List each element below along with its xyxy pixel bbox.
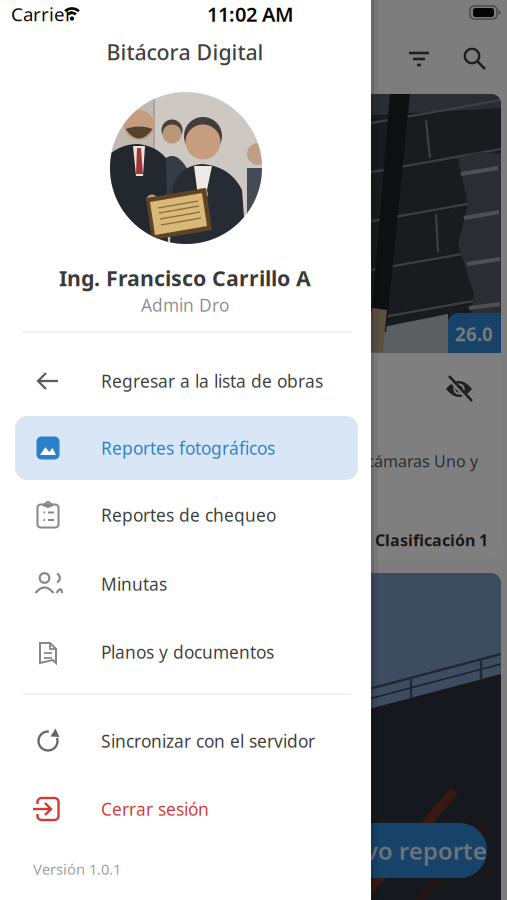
staticText: Versión 1.0.1	[33, 859, 121, 879]
staticText: Bitácora Digital	[106, 38, 263, 66]
button[interactable]: Buscar	[443, 37, 507, 81]
staticText: Nuevo reporte	[317, 835, 487, 866]
button[interactable]: Regresar a la lista de obras	[15, 349, 358, 413]
button[interactable]: Planos y documentos	[15, 620, 358, 684]
staticText: Reportes de chequeo	[101, 503, 276, 526]
button[interactable]: Sincronizar con el servidor	[15, 709, 358, 773]
staticText: Reportes fotográficos	[101, 436, 275, 459]
staticText: Muros Recámaras Uno y	[294, 450, 478, 472]
staticText: Cerrar sesión	[101, 797, 209, 820]
staticText: Minutas	[101, 572, 167, 595]
button[interactable]: Reportes fotográficos	[15, 416, 358, 480]
button[interactable]: Reportes de chequeo	[15, 483, 358, 547]
button[interactable]: Reporte Recámaras Uno y	[6, 94, 501, 559]
staticText: Admin Dro	[141, 293, 229, 316]
button[interactable]: Filtrar	[387, 37, 451, 81]
staticText: Ing. Francisco Carrillo A	[59, 264, 311, 292]
staticText: Regresar a la lista de obras	[101, 369, 323, 392]
button[interactable]: Cerrar sesión	[15, 777, 358, 841]
staticText: Clasificación 1	[375, 529, 488, 551]
staticText: Sincronizar con el servidor	[101, 729, 315, 752]
button[interactable]: Ocultar	[435, 376, 483, 402]
button[interactable]: Nuevo reporte	[317, 823, 487, 878]
staticText: Carrier	[11, 2, 73, 26]
staticText: 11:02 AM	[207, 1, 294, 27]
staticText: Planos y documentos	[101, 640, 274, 663]
button[interactable]: Minutas	[15, 552, 358, 616]
staticText: 26.0	[455, 322, 493, 346]
button[interactable]: Reporte	[6, 573, 501, 900]
